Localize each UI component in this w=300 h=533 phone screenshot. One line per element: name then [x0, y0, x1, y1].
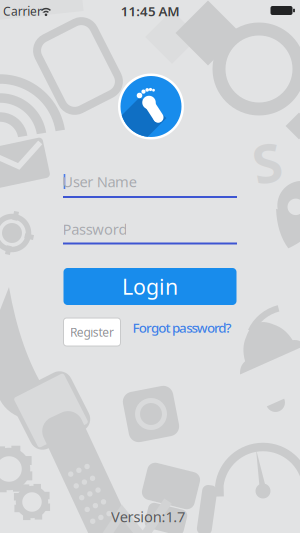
button[interactable]: Register	[63, 318, 120, 346]
staticText: 11:45 AM	[121, 2, 179, 20]
staticText: Login	[122, 272, 178, 301]
button[interactable]: Forgot password?	[132, 319, 231, 336]
staticText: User Name	[62, 172, 137, 191]
button[interactable]: Login	[63, 268, 236, 305]
staticText: Forgot password?	[132, 319, 231, 336]
staticText: Version:1.7	[111, 507, 185, 526]
staticText: Password	[62, 219, 127, 239]
staticText: S	[252, 127, 281, 197]
staticText: Carrier	[3, 3, 42, 19]
staticText: Register	[70, 324, 114, 340]
